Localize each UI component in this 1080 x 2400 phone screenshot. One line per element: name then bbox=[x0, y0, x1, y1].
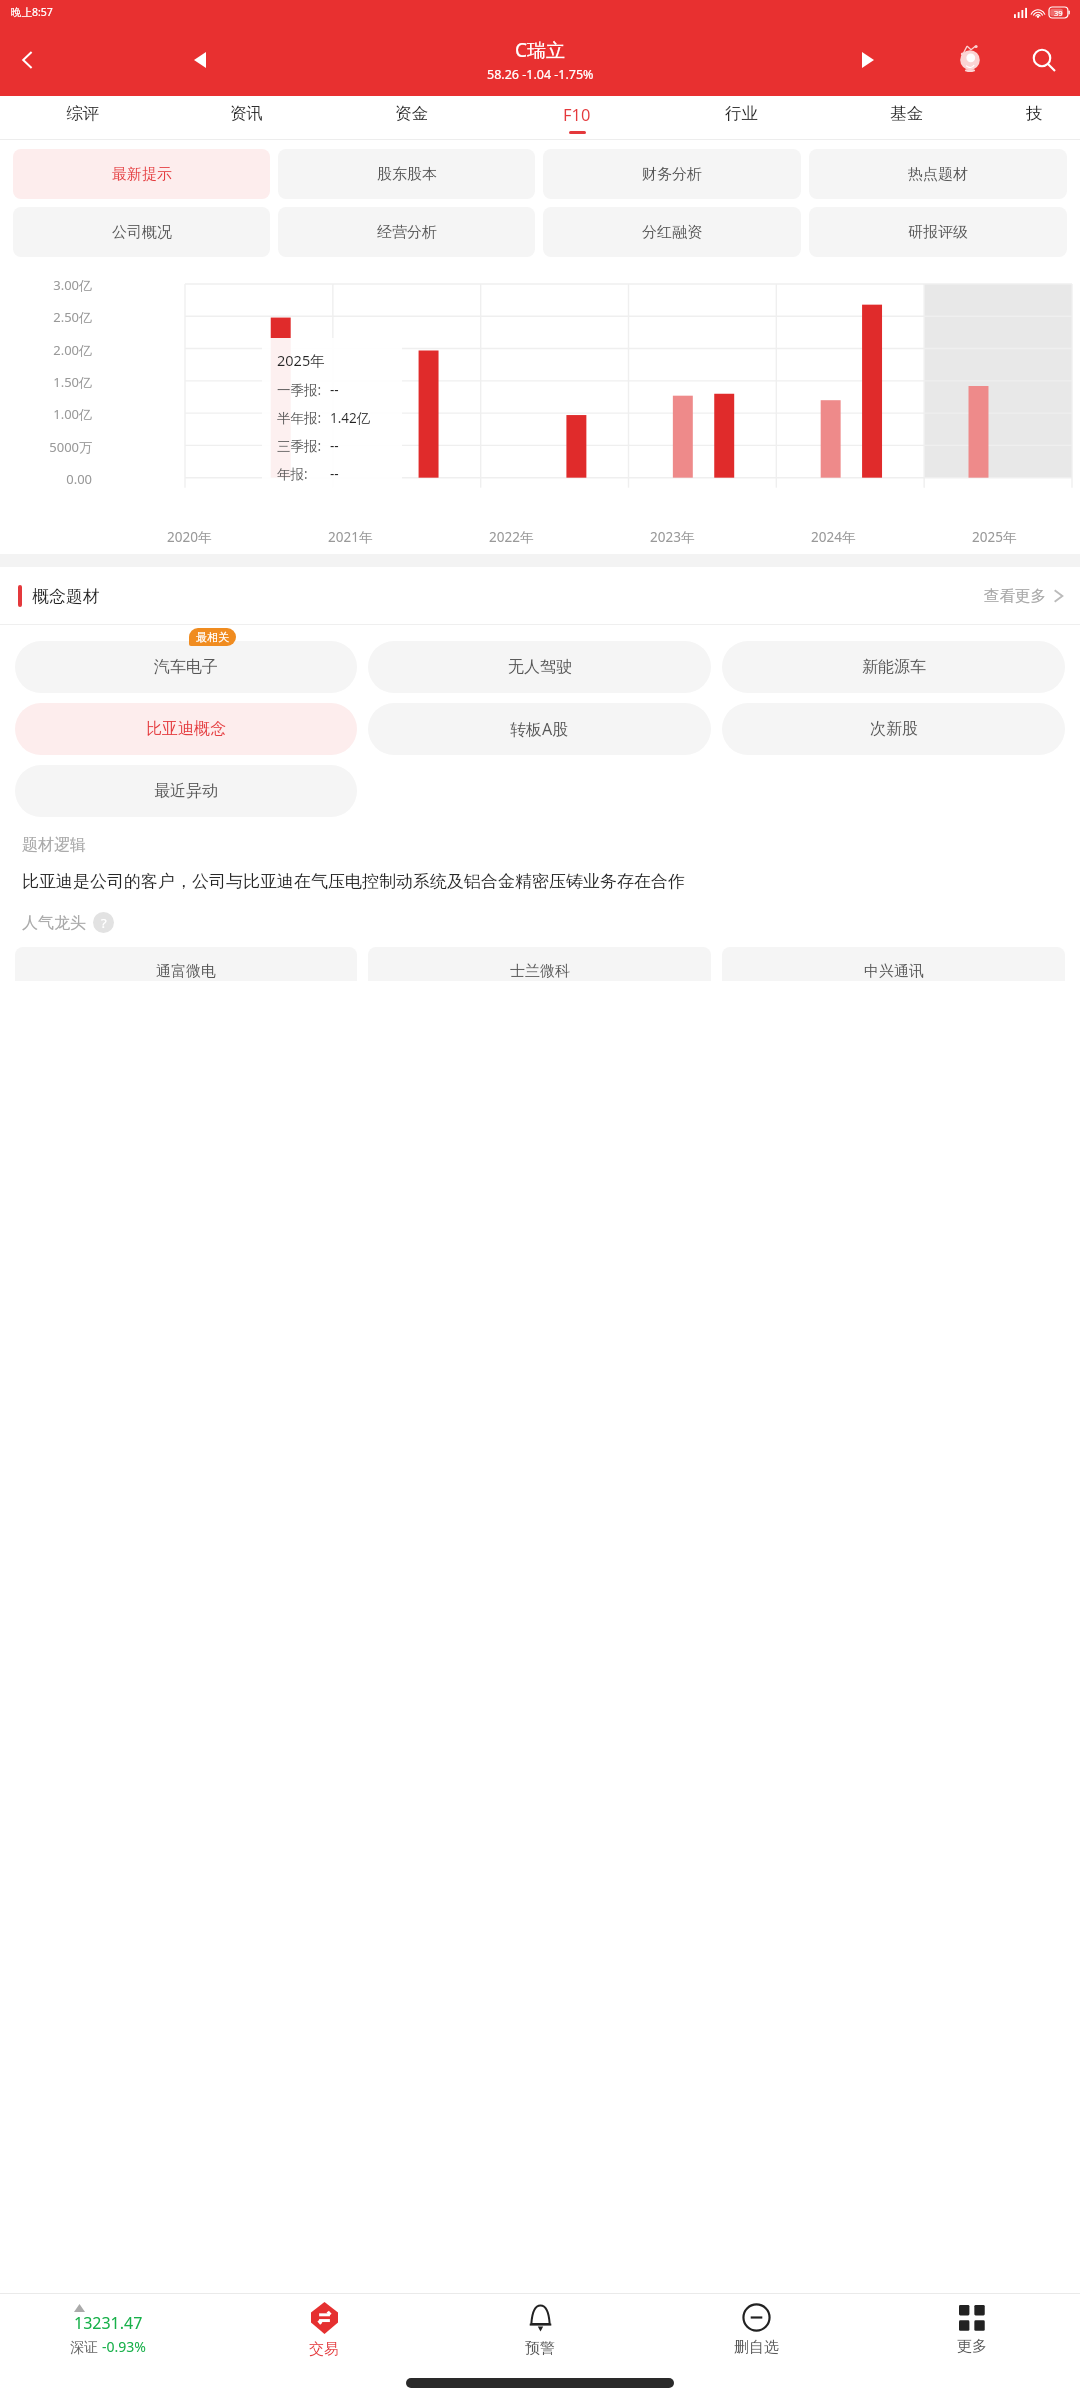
button[interactable]: 新能源车 bbox=[722, 641, 1065, 693]
button[interactable]: 汽车电子 bbox=[15, 641, 357, 693]
button[interactable]: 概念题材 bbox=[0, 567, 1080, 625]
staticText: 公司概况 bbox=[112, 223, 172, 242]
button[interactable]: 转板A股 bbox=[368, 703, 711, 755]
staticText: 删自选 bbox=[734, 2338, 779, 2357]
button[interactable]: 经营分析 bbox=[278, 207, 535, 257]
staticText: 资讯 bbox=[230, 103, 263, 124]
button[interactable]: 基金 bbox=[824, 96, 989, 140]
button[interactable]: 删自选 bbox=[648, 2294, 864, 2366]
staticText: 一季报: bbox=[277, 381, 322, 399]
staticText: -- bbox=[330, 381, 339, 399]
staticText: 资金 bbox=[395, 103, 428, 124]
staticText: 转板A股 bbox=[510, 718, 569, 740]
button[interactable]: 无人驾驶 bbox=[368, 641, 711, 693]
staticText: -- bbox=[330, 465, 339, 483]
staticText: 2024年 bbox=[811, 528, 856, 546]
button[interactable]: 分红融资 bbox=[543, 207, 801, 257]
button[interactable]: 说明 bbox=[93, 912, 114, 933]
staticText: 研报评级 bbox=[908, 223, 968, 242]
staticText: 通富微电 bbox=[156, 962, 216, 981]
button[interactable]: 士兰微科 bbox=[368, 947, 711, 981]
staticText: 次新股 bbox=[870, 719, 918, 739]
staticText: 3.00亿 bbox=[0, 276, 92, 294]
button[interactable]: 股东股本 bbox=[278, 149, 535, 199]
staticText: 5000万 bbox=[0, 438, 92, 456]
staticText: 晚上8:57 bbox=[11, 5, 53, 19]
button[interactable]: 更多 bbox=[864, 2294, 1080, 2366]
staticText: 查看更多 bbox=[984, 586, 1046, 606]
button[interactable]: 返回 bbox=[0, 32, 56, 88]
staticText: 概念题材 bbox=[32, 586, 100, 607]
staticText: 年报: bbox=[277, 465, 308, 483]
staticText: 技 bbox=[1026, 103, 1043, 124]
staticText: 2022年 bbox=[489, 528, 534, 546]
staticText: 0.00 bbox=[0, 470, 92, 488]
staticText: 新能源车 bbox=[862, 657, 926, 677]
button[interactable]: 行业 bbox=[659, 96, 824, 140]
staticText: 预警 bbox=[525, 2339, 555, 2358]
button[interactable]: 通富微电 bbox=[15, 947, 357, 981]
staticText: 无人驾驶 bbox=[508, 657, 572, 677]
staticText: 士兰微科 bbox=[510, 962, 570, 981]
button[interactable]: 财务分析 bbox=[543, 149, 801, 199]
button[interactable]: 下一只 bbox=[846, 38, 890, 82]
button[interactable]: 搜索 bbox=[1018, 34, 1070, 86]
staticText: ? bbox=[101, 914, 107, 932]
staticText: 2.00亿 bbox=[0, 341, 92, 359]
button[interactable]: 技 bbox=[989, 96, 1080, 140]
staticText: 比亚迪概念 bbox=[146, 719, 226, 739]
staticText: 1.00亿 bbox=[0, 405, 92, 423]
button[interactable]: 资金 bbox=[329, 96, 494, 140]
staticText: F10 bbox=[563, 103, 591, 125]
staticText: 39 bbox=[1054, 8, 1063, 18]
staticText: 2020年 bbox=[167, 528, 212, 546]
button[interactable]: 研报评级 bbox=[809, 207, 1067, 257]
staticText: 经营分析 bbox=[377, 223, 437, 242]
button[interactable]: C瑞立 bbox=[487, 37, 594, 83]
staticText: 股东股本 bbox=[377, 165, 437, 184]
staticText: 2023年 bbox=[650, 528, 695, 546]
staticText: 2021年 bbox=[328, 528, 373, 546]
staticText: 综评 bbox=[66, 103, 99, 124]
button[interactable]: 智能助手 bbox=[944, 34, 996, 86]
button[interactable]: 交易 bbox=[216, 2294, 432, 2366]
button[interactable]: 热点题材 bbox=[809, 149, 1067, 199]
staticText: 2.50亿 bbox=[0, 308, 92, 326]
staticText: 最近异动 bbox=[154, 781, 218, 801]
staticText: 基金 bbox=[890, 103, 923, 124]
staticText: -0.93% bbox=[102, 2337, 146, 2356]
staticText: 2025年 bbox=[277, 350, 325, 370]
staticText: 财务分析 bbox=[642, 165, 702, 184]
staticText: 汽车电子 bbox=[154, 657, 218, 677]
staticText: 中兴通讯 bbox=[864, 962, 924, 981]
staticText: 最新提示 bbox=[112, 165, 172, 184]
staticText: 分红融资 bbox=[642, 223, 702, 242]
staticText: 比亚迪是公司的客户，公司与比亚迪在气压电控制动系统及铝合金精密压铸业务存在合作 bbox=[22, 871, 685, 892]
button[interactable]: 比亚迪概念 bbox=[15, 703, 357, 755]
button[interactable]: 最近异动 bbox=[15, 765, 357, 817]
staticText: 更多 bbox=[957, 2337, 987, 2356]
button[interactable]: 综评 bbox=[0, 96, 164, 140]
staticText: 1.50亿 bbox=[0, 373, 92, 391]
staticText: 交易 bbox=[309, 2340, 339, 2359]
button[interactable]: 资讯 bbox=[164, 96, 329, 140]
staticText: 最相关 bbox=[196, 630, 229, 644]
staticText: 人气龙头 bbox=[22, 913, 86, 933]
staticText: 1.42亿 bbox=[330, 409, 371, 427]
button[interactable]: 中兴通讯 bbox=[722, 947, 1065, 981]
button[interactable]: 最新提示 bbox=[13, 149, 270, 199]
staticText: 58.26 -1.04 -1.75% bbox=[487, 66, 594, 83]
button[interactable]: F10 bbox=[494, 96, 659, 140]
button[interactable]: 次新股 bbox=[722, 703, 1065, 755]
button[interactable]: 上一只 bbox=[178, 38, 222, 82]
staticText: 题材逻辑 bbox=[22, 835, 86, 855]
button[interactable]: 公司概况 bbox=[13, 207, 270, 257]
button[interactable]: 13231.47 bbox=[0, 2294, 216, 2366]
staticText: -- bbox=[330, 437, 339, 455]
button[interactable]: 预警 bbox=[432, 2294, 648, 2366]
staticText: 三季报: bbox=[277, 437, 322, 455]
staticText: 热点题材 bbox=[908, 165, 968, 184]
staticText: C瑞立 bbox=[515, 37, 566, 63]
staticText: 行业 bbox=[725, 103, 758, 124]
staticText: 深证 bbox=[70, 2337, 102, 2356]
